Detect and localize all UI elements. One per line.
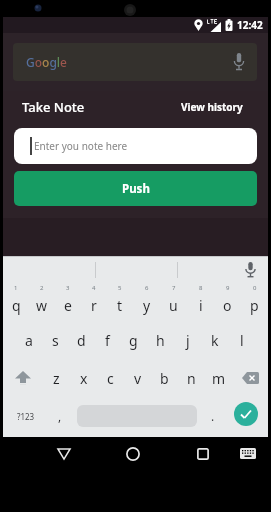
button[interactable]: View history	[181, 100, 243, 114]
staticText: n	[187, 369, 196, 388]
button[interactable]: f	[94, 321, 120, 359]
button[interactable]	[237, 443, 259, 465]
staticText: h	[156, 331, 165, 350]
staticText: 6	[145, 284, 149, 292]
staticText: r	[91, 296, 97, 315]
button[interactable]: m	[205, 359, 232, 397]
staticText: f	[105, 331, 110, 350]
button[interactable]: x	[70, 359, 97, 397]
staticText: e	[64, 296, 72, 315]
staticText: 3	[66, 284, 70, 292]
button[interactable]: 5	[107, 283, 133, 321]
staticText: x	[80, 369, 88, 388]
staticText: t	[117, 296, 123, 315]
button[interactable]	[234, 402, 258, 426]
staticText: a	[25, 331, 33, 350]
staticText: j	[186, 331, 190, 350]
button[interactable]: Push	[14, 171, 257, 206]
staticText: z	[53, 369, 60, 388]
staticText: 7	[172, 284, 176, 292]
staticText: .	[211, 408, 215, 424]
button[interactable]: g	[120, 321, 147, 359]
button[interactable]: j	[174, 321, 201, 359]
staticText: 9	[226, 284, 230, 292]
staticText: 5	[118, 284, 122, 292]
staticText: p	[250, 296, 259, 315]
button[interactable]: Google	[13, 43, 257, 81]
staticText: g	[129, 331, 138, 350]
button[interactable]	[245, 262, 256, 278]
staticText: Enter you note here	[34, 139, 128, 153]
button[interactable]	[51, 441, 77, 467]
staticText: b	[160, 369, 169, 388]
staticText: u	[169, 296, 178, 315]
staticText: 4	[92, 284, 96, 292]
button[interactable]: ?123	[8, 397, 44, 435]
button[interactable]: .	[203, 397, 223, 435]
button[interactable]: s	[42, 321, 68, 359]
button[interactable]: n	[178, 359, 205, 397]
staticText: Take Note	[22, 98, 85, 116]
button[interactable]	[190, 441, 216, 467]
button[interactable]: c	[97, 359, 124, 397]
staticText: s	[52, 331, 59, 350]
staticText: y	[143, 296, 151, 315]
staticText: ?123	[17, 411, 35, 422]
staticText: 2	[40, 284, 44, 292]
button[interactable]: 4	[81, 283, 107, 321]
staticText: w	[36, 296, 48, 315]
staticText: ,	[58, 408, 62, 424]
button[interactable]: 8	[187, 283, 214, 321]
button[interactable]: a	[16, 321, 42, 359]
button[interactable]: d	[68, 321, 94, 359]
button[interactable]	[232, 359, 268, 397]
button[interactable]	[120, 441, 146, 467]
staticText: 0	[253, 284, 257, 292]
button[interactable]: h	[147, 321, 174, 359]
staticText: d	[77, 331, 86, 350]
button[interactable]: b	[151, 359, 178, 397]
button[interactable]: v	[124, 359, 151, 397]
staticText: 8	[199, 284, 203, 292]
button[interactable]: Enter you note here	[14, 128, 257, 164]
button[interactable]: ,	[50, 397, 70, 435]
staticText: Push	[122, 181, 150, 197]
button[interactable]	[3, 359, 43, 397]
button[interactable]: 7	[160, 283, 187, 321]
button[interactable]: l	[228, 321, 255, 359]
staticText: c	[107, 369, 114, 388]
button[interactable]: z	[43, 359, 70, 397]
staticText: 1	[14, 284, 18, 292]
button[interactable]: k	[201, 321, 228, 359]
button[interactable]: 2	[29, 283, 55, 321]
button[interactable]: 1	[3, 283, 29, 321]
button[interactable]: 6	[133, 283, 160, 321]
button[interactable]: 0	[241, 283, 268, 321]
staticText: Google	[26, 54, 67, 70]
staticText: v	[134, 369, 142, 388]
staticText: m	[212, 369, 226, 388]
staticText: o	[223, 296, 232, 315]
staticText: q	[12, 296, 21, 315]
button[interactable]: 3	[55, 283, 81, 321]
staticText: i	[199, 296, 203, 315]
staticText: 12:42	[237, 18, 263, 32]
staticText: k	[211, 331, 219, 350]
staticText: l	[240, 331, 244, 350]
button[interactable]: 9	[214, 283, 241, 321]
